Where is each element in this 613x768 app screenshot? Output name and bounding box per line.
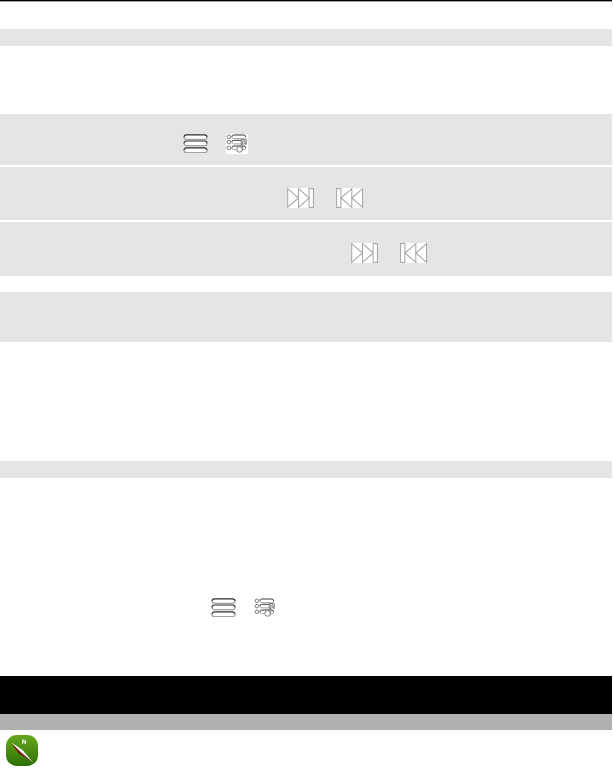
button[interactable]: Playing queue: [212, 597, 235, 617]
button[interactable]: Playlist: [254, 598, 276, 618]
button[interactable]: Playlist: [226, 134, 248, 154]
button[interactable]: Skip to previous: [336, 188, 363, 208]
button[interactable]: Playing queue: [184, 133, 207, 153]
button[interactable]: Skip to next: [287, 188, 314, 208]
button[interactable]: Skip to next: [351, 243, 378, 263]
button[interactable]: Compass app: [6, 735, 38, 766]
button[interactable]: Skip to previous: [400, 243, 427, 263]
